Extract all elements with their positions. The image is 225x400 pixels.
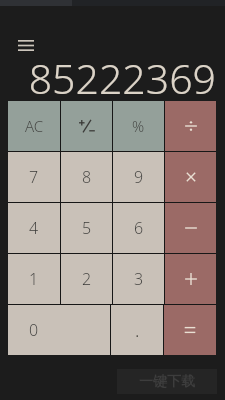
button[interactable]: Multiply <box>165 152 216 202</box>
button[interactable]: 0 <box>8 305 110 355</box>
button[interactable]: AC <box>8 101 60 151</box>
staticText: 85222369 <box>28 50 216 98</box>
button[interactable]: 3 <box>113 254 164 304</box>
button[interactable]: 9 <box>113 152 164 202</box>
staticText: 1 <box>29 268 39 290</box>
staticText: 8 <box>82 166 92 188</box>
button[interactable]: 1 <box>8 254 60 304</box>
button[interactable]: 2 <box>61 254 112 304</box>
button[interactable]: 4 <box>8 203 60 253</box>
staticText: 3 <box>134 268 144 290</box>
staticText: . <box>135 318 140 343</box>
button[interactable]: Equals <box>164 305 216 355</box>
staticText: 7 <box>29 166 39 188</box>
staticText: 6 <box>134 217 144 239</box>
button[interactable]: Menu <box>14 33 38 57</box>
button[interactable]: 6 <box>113 203 164 253</box>
staticText: 5 <box>82 217 92 239</box>
staticText: 0 <box>29 319 39 341</box>
button[interactable]: Add <box>165 254 216 304</box>
button[interactable]: % <box>113 101 164 151</box>
button[interactable]: 8 <box>61 152 112 202</box>
button[interactable]: 5 <box>61 203 112 253</box>
button[interactable]: Divide <box>165 101 216 151</box>
button[interactable]: Subtract <box>165 203 216 253</box>
button[interactable]: 7 <box>8 152 60 202</box>
staticText: 9 <box>134 166 144 188</box>
button[interactable]: Plus minus <box>61 101 112 151</box>
staticText: AC <box>25 116 44 136</box>
staticText: 2 <box>82 268 92 290</box>
staticText: 4 <box>29 217 39 239</box>
staticText: % <box>132 116 145 136</box>
staticText: 一键下载 <box>139 373 195 391</box>
